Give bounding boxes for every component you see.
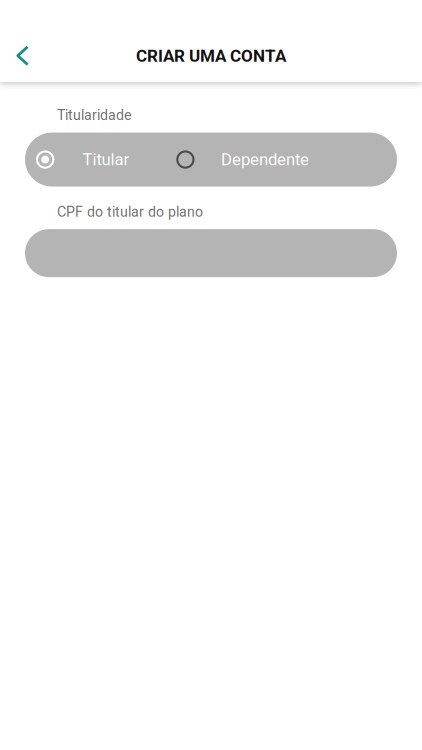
button[interactable]: CPF do titular do plano [25, 229, 397, 277]
staticText: Dependente [221, 150, 309, 169]
staticText: CRIAR UMA CONTA [136, 46, 286, 66]
button[interactable]: Back [0, 34, 44, 78]
staticText: Titular [82, 150, 129, 169]
button[interactable]: Titular [25, 133, 154, 187]
staticText: Titularidade [57, 107, 131, 124]
staticText: CPF do titular do plano [57, 204, 203, 220]
button[interactable]: Dependente [154, 133, 333, 187]
